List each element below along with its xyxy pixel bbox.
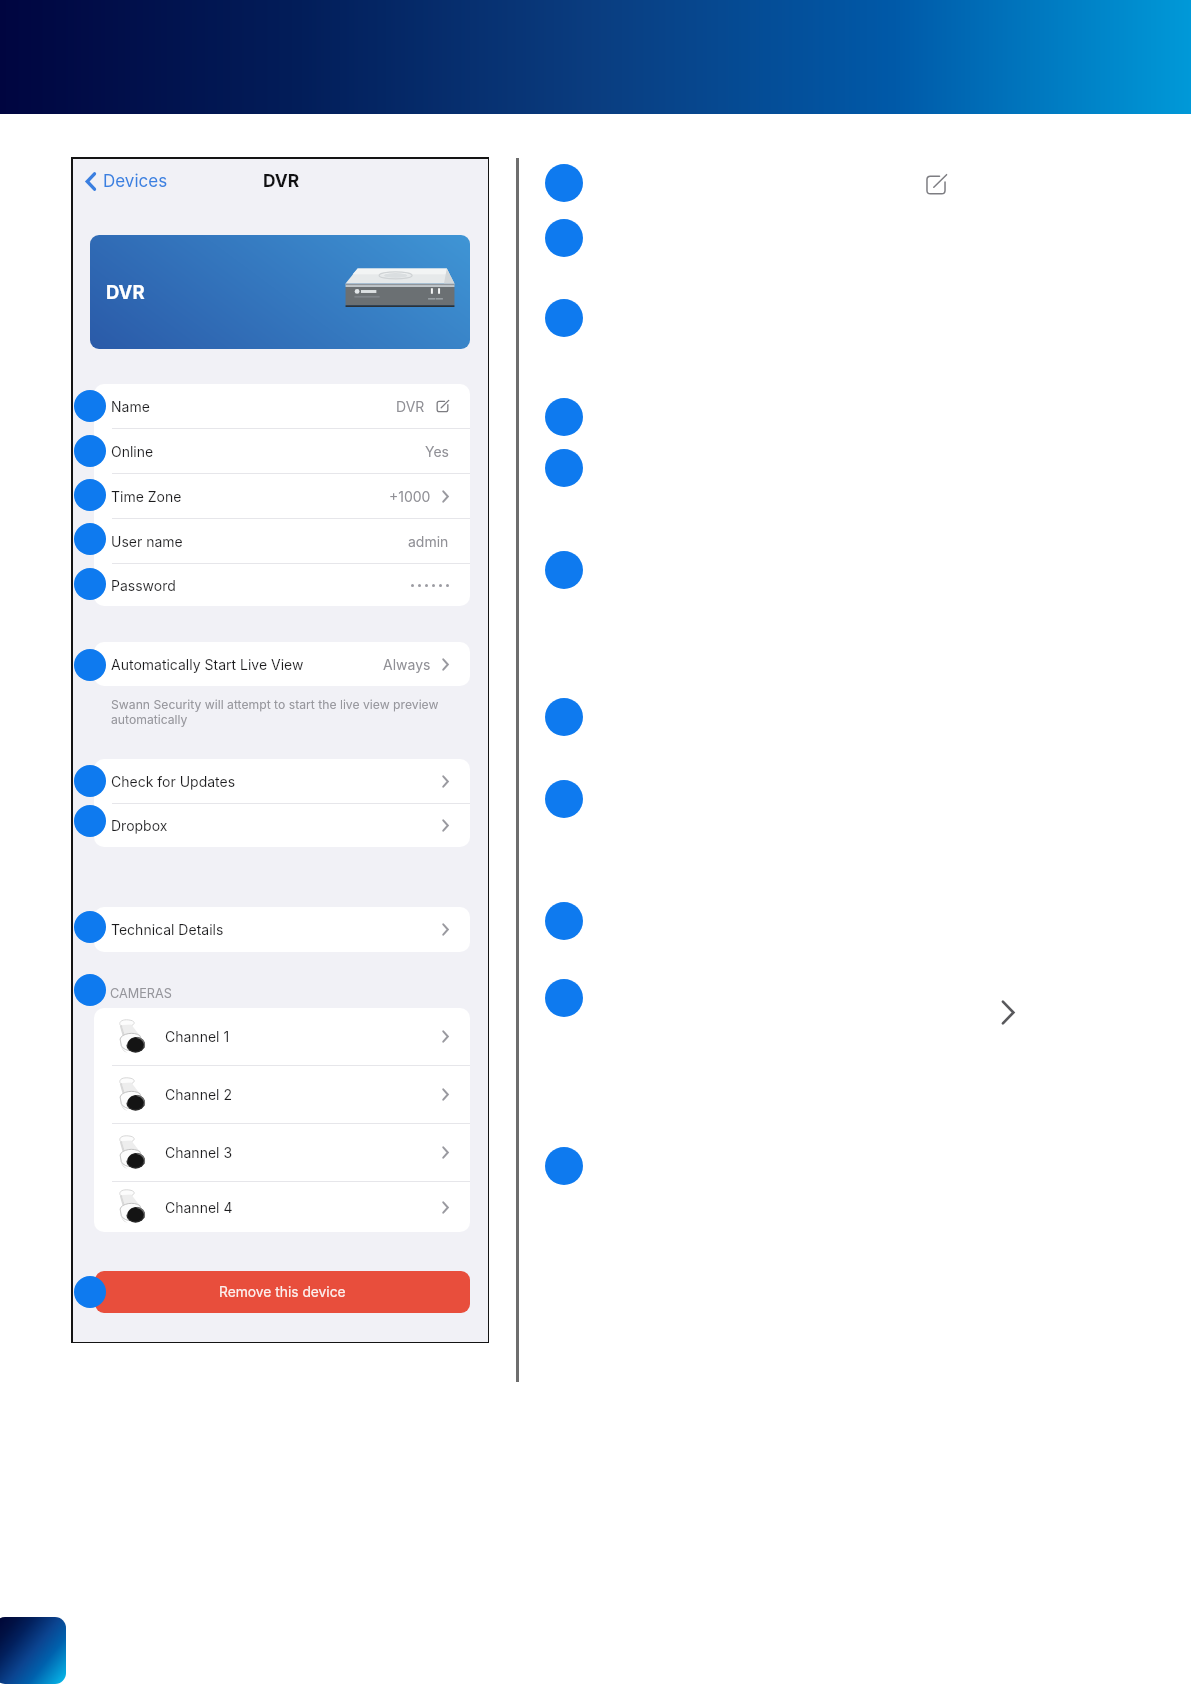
- button[interactable]: Name: [94, 384, 470, 428]
- button[interactable]: Marker 11: [74, 1276, 106, 1308]
- staticText: Name: [111, 398, 150, 415]
- button[interactable]: Callout 9: [545, 902, 583, 940]
- staticText: DVR: [106, 281, 145, 303]
- staticText: Channel 2: [165, 1086, 232, 1103]
- button[interactable]: Callout 5: [545, 449, 583, 487]
- staticText: Channel 3: [165, 1144, 233, 1161]
- staticText: Automatically Start Live View: [111, 656, 304, 673]
- staticText: +1000: [389, 488, 431, 505]
- button[interactable]: Edit name: [925, 174, 947, 196]
- button[interactable]: Callout 6: [545, 551, 583, 589]
- button[interactable]: Check for Updates: [94, 759, 470, 803]
- button[interactable]: Marker 3: [74, 479, 106, 511]
- button[interactable]: Open channel: [1000, 999, 1016, 1026]
- button[interactable]: Callout 7: [545, 698, 583, 736]
- staticText: admin: [408, 533, 449, 550]
- staticText: Online: [111, 443, 154, 460]
- staticText: Check for Updates: [111, 773, 236, 790]
- button[interactable]: Callout 1: [545, 164, 583, 202]
- button[interactable]: Callout 3: [545, 299, 583, 337]
- button[interactable]: Channel 1: [94, 1008, 470, 1065]
- button[interactable]: Remove this device: [95, 1271, 470, 1313]
- staticText: Devices: [103, 171, 168, 192]
- staticText: Always: [383, 656, 431, 673]
- button[interactable]: Password: [94, 564, 470, 606]
- button[interactable]: Marker 7: [74, 765, 106, 797]
- button[interactable]: Online: [94, 429, 470, 473]
- staticText: Yes: [425, 443, 449, 460]
- button[interactable]: Time Zone: [94, 474, 470, 518]
- button[interactable]: Callout 8: [545, 780, 583, 818]
- button[interactable]: Callout 10: [545, 979, 583, 1017]
- button[interactable]: Marker 8: [74, 805, 106, 837]
- button[interactable]: Marker 10: [74, 974, 106, 1006]
- button[interactable]: Channel 3: [94, 1124, 470, 1181]
- button[interactable]: Dropbox: [94, 804, 470, 847]
- staticText: User name: [111, 533, 183, 550]
- button[interactable]: Channel 4: [94, 1182, 470, 1232]
- button[interactable]: Callout 2: [545, 219, 583, 257]
- staticText: DVR: [263, 170, 300, 191]
- staticText: Remove this device: [219, 1284, 346, 1301]
- button[interactable]: Automatically Start Live View: [94, 642, 470, 686]
- button[interactable]: Marker 2: [74, 435, 106, 467]
- button[interactable]: Marker 1: [74, 390, 106, 422]
- button[interactable]: DVR: [90, 235, 470, 349]
- staticText: CAMERAS: [110, 986, 172, 1001]
- button[interactable]: Devices: [82, 168, 171, 195]
- staticText: Technical Details: [111, 921, 224, 938]
- button[interactable]: Marker 4: [74, 523, 106, 555]
- button[interactable]: Channel 2: [94, 1066, 470, 1123]
- staticText: Dropbox: [111, 817, 168, 834]
- staticText: Password: [111, 577, 176, 594]
- button[interactable]: Technical Details: [94, 907, 470, 952]
- button[interactable]: Marker 9: [74, 911, 106, 943]
- button[interactable]: Marker 5: [74, 568, 106, 600]
- button[interactable]: Callout 4: [545, 398, 583, 436]
- button[interactable]: User name: [94, 519, 470, 563]
- staticText: DVR: [396, 398, 425, 415]
- staticText: Channel 1: [165, 1028, 230, 1045]
- staticText: Time Zone: [111, 488, 182, 505]
- staticText: Swann Security will attempt to start the…: [111, 697, 439, 727]
- button[interactable]: Callout 11: [545, 1147, 583, 1185]
- button[interactable]: Marker 6: [74, 649, 106, 681]
- staticText: Channel 4: [165, 1199, 233, 1216]
